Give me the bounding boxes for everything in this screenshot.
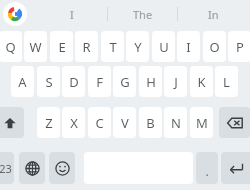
button[interactable]: Enter: [221, 152, 250, 184]
button[interactable]: I: [177, 31, 200, 62]
button[interactable]: Period: [196, 152, 218, 184]
staticText: D: [69, 73, 79, 91]
button[interactable]: K: [190, 66, 213, 97]
staticText: H: [146, 73, 156, 91]
staticText: O: [209, 38, 220, 56]
button[interactable]: I: [37, 0, 107, 28]
staticText: C: [95, 114, 104, 132]
staticText: A: [18, 73, 27, 91]
staticText: R: [82, 38, 91, 56]
staticText: X: [70, 114, 78, 132]
staticText: T: [109, 38, 117, 56]
button[interactable]: Symbols: [0, 152, 14, 184]
button[interactable]: J: [164, 66, 187, 97]
button[interactable]: Emoji: [49, 152, 75, 184]
button[interactable]: H: [139, 66, 162, 97]
staticText: Z: [45, 114, 53, 132]
staticText: Y: [134, 38, 142, 56]
button[interactable]: V: [113, 107, 136, 138]
staticText: J: [174, 73, 178, 91]
staticText: P: [236, 38, 244, 56]
staticText: Q: [5, 38, 16, 56]
button[interactable]: U: [152, 31, 175, 62]
staticText: G: [120, 73, 130, 91]
button[interactable]: M: [190, 107, 213, 138]
button[interactable]: F: [88, 66, 111, 97]
staticText: L: [223, 73, 230, 91]
button[interactable]: O: [203, 31, 226, 62]
staticText: .: [205, 163, 209, 179]
button[interactable]: Z: [37, 107, 60, 138]
button[interactable]: Q: [0, 31, 22, 62]
button[interactable]: Shift: [0, 107, 24, 138]
button[interactable]: G: [113, 66, 136, 97]
button[interactable]: B: [139, 107, 162, 138]
staticText: V: [121, 114, 129, 132]
staticText: B: [146, 114, 155, 132]
button[interactable]: In: [178, 0, 248, 28]
button[interactable]: Change language: [19, 152, 45, 184]
button[interactable]: A: [11, 66, 34, 97]
button[interactable]: The: [108, 0, 177, 28]
staticText: I: [70, 7, 74, 22]
staticText: K: [197, 73, 206, 91]
button[interactable]: Google: [3, 2, 27, 26]
button[interactable]: C: [88, 107, 111, 138]
button[interactable]: Y: [126, 31, 149, 62]
staticText: U: [159, 38, 169, 56]
staticText: The: [133, 7, 153, 22]
staticText: I: [186, 38, 191, 56]
button[interactable]: Backspace: [219, 107, 250, 138]
staticText: F: [96, 73, 103, 91]
button[interactable]: T: [101, 31, 124, 62]
button[interactable]: W: [24, 31, 47, 62]
staticText: S: [45, 73, 53, 91]
button[interactable]: E: [50, 31, 73, 62]
button[interactable]: X: [62, 107, 85, 138]
staticText: N: [171, 114, 181, 132]
button[interactable]: D: [62, 66, 85, 97]
button[interactable]: P: [228, 31, 250, 62]
button[interactable]: N: [164, 107, 187, 138]
staticText: M: [196, 114, 208, 132]
staticText: ?123: [0, 161, 12, 176]
button[interactable]: L: [215, 66, 238, 97]
button[interactable]: S: [37, 66, 60, 97]
staticText: E: [58, 38, 66, 56]
staticText: W: [29, 38, 42, 56]
button[interactable]: R: [75, 31, 98, 62]
staticText: In: [208, 7, 219, 22]
